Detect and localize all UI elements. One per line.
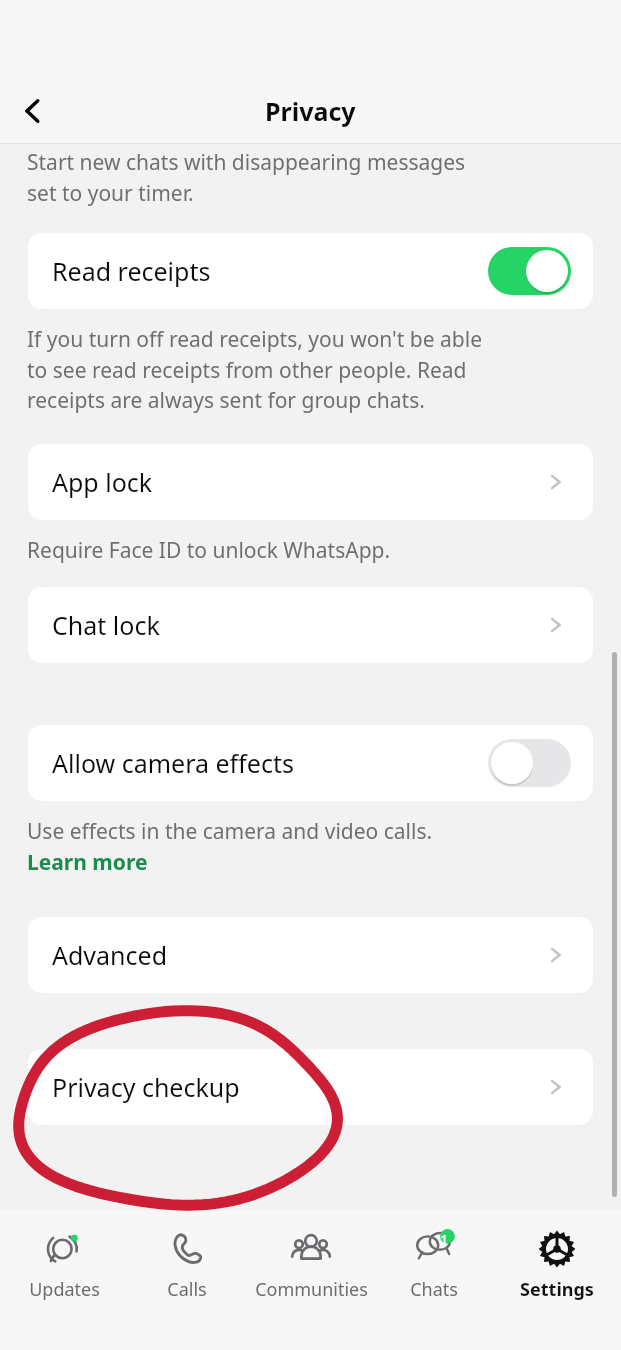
button[interactable]: App lock xyxy=(28,444,593,520)
staticText: Chat lock xyxy=(52,608,545,642)
staticText: 1 xyxy=(436,1229,452,1249)
button[interactable]: Read receipts on xyxy=(488,247,571,295)
button[interactable]: Communities xyxy=(252,1224,370,1306)
button[interactable]: Allow camera effects off xyxy=(488,739,571,787)
staticText: Calls xyxy=(167,1277,207,1302)
staticText: App lock xyxy=(52,465,545,499)
button[interactable]: 1 xyxy=(375,1224,493,1306)
staticText: Settings xyxy=(520,1277,594,1302)
staticText: If you turn off read receipts, you won't… xyxy=(27,325,483,414)
button[interactable]: Advanced xyxy=(28,917,593,993)
staticText: Start new chats with disappearing messag… xyxy=(27,148,466,207)
staticText: Privacy checkup xyxy=(52,1070,545,1104)
button[interactable]: Read receipts xyxy=(28,233,593,309)
staticText: Communities xyxy=(255,1277,368,1302)
staticText: Read receipts xyxy=(52,254,488,288)
button[interactable]: Updates xyxy=(5,1224,123,1306)
button[interactable]: Learn more xyxy=(27,848,148,877)
button[interactable]: Calls xyxy=(128,1224,246,1306)
staticText: Advanced xyxy=(52,938,545,972)
button[interactable]: Chat lock xyxy=(28,587,593,663)
button[interactable]: Privacy checkup xyxy=(28,1049,593,1125)
staticText: Chats xyxy=(410,1277,458,1302)
staticText: Updates xyxy=(29,1277,100,1302)
staticText: Allow camera effects xyxy=(52,746,488,780)
staticText: Use effects in the camera and video call… xyxy=(27,817,433,846)
button[interactable]: Allow camera effects xyxy=(28,725,593,801)
staticText: Require Face ID to unlock WhatsApp. xyxy=(27,536,391,565)
staticText: Privacy xyxy=(265,94,356,128)
button[interactable]: Settings xyxy=(498,1224,616,1306)
button[interactable]: Back xyxy=(6,84,60,138)
